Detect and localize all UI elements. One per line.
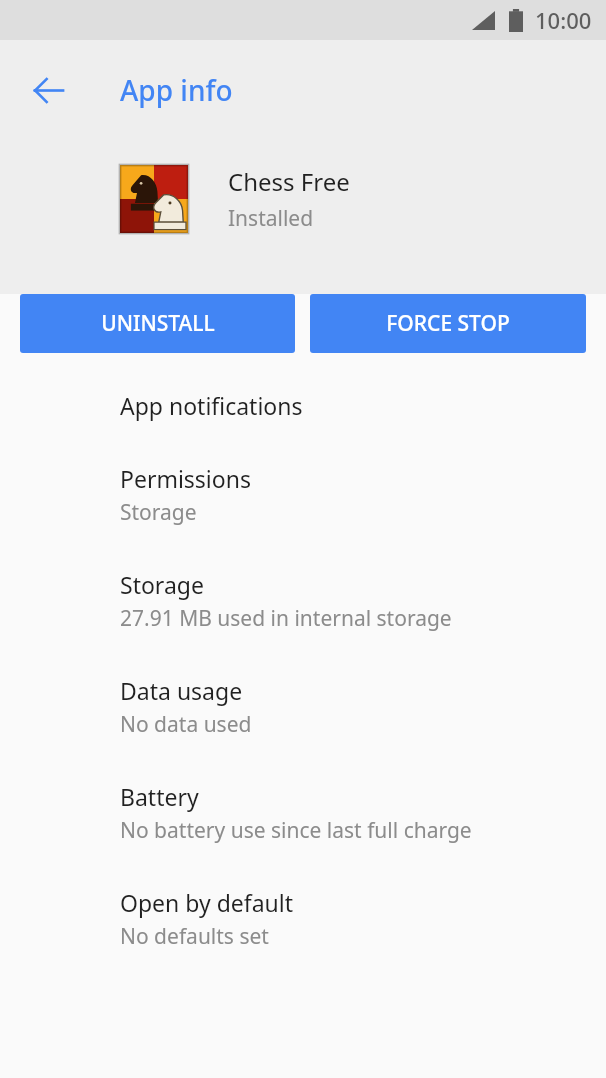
staticText: No data used — [120, 710, 252, 739]
button[interactable]: App notifications — [0, 369, 606, 442]
staticText: Open by default — [120, 887, 294, 918]
staticText: Data usage — [120, 675, 243, 706]
staticText: FORCE STOP — [386, 309, 510, 338]
button[interactable]: Chess Free — [0, 140, 606, 258]
button[interactable]: Permissions — [0, 442, 606, 548]
staticText: Permissions — [120, 463, 251, 494]
button[interactable]: Open by default — [0, 866, 606, 972]
staticText: App notifications — [120, 390, 303, 421]
button[interactable]: UNINSTALL — [20, 294, 295, 353]
staticText: App info — [120, 71, 233, 109]
staticText: UNINSTALL — [101, 309, 215, 338]
staticText: Battery — [120, 781, 199, 812]
button[interactable]: Data usage — [0, 654, 606, 760]
staticText: Storage — [120, 569, 204, 600]
staticText: Storage — [120, 498, 197, 527]
staticText: 27.91 MB used in internal storage — [120, 604, 452, 633]
button[interactable]: Storage — [0, 548, 606, 654]
staticText: No defaults set — [120, 922, 269, 951]
button[interactable]: Back — [20, 62, 76, 118]
staticText: Chess Free — [228, 165, 350, 198]
button[interactable]: FORCE STOP — [310, 294, 586, 353]
button[interactable]: Battery — [0, 760, 606, 866]
staticText: No battery use since last full charge — [120, 816, 472, 845]
staticText: Installed — [228, 204, 314, 233]
staticText: 10:00 — [535, 5, 592, 35]
